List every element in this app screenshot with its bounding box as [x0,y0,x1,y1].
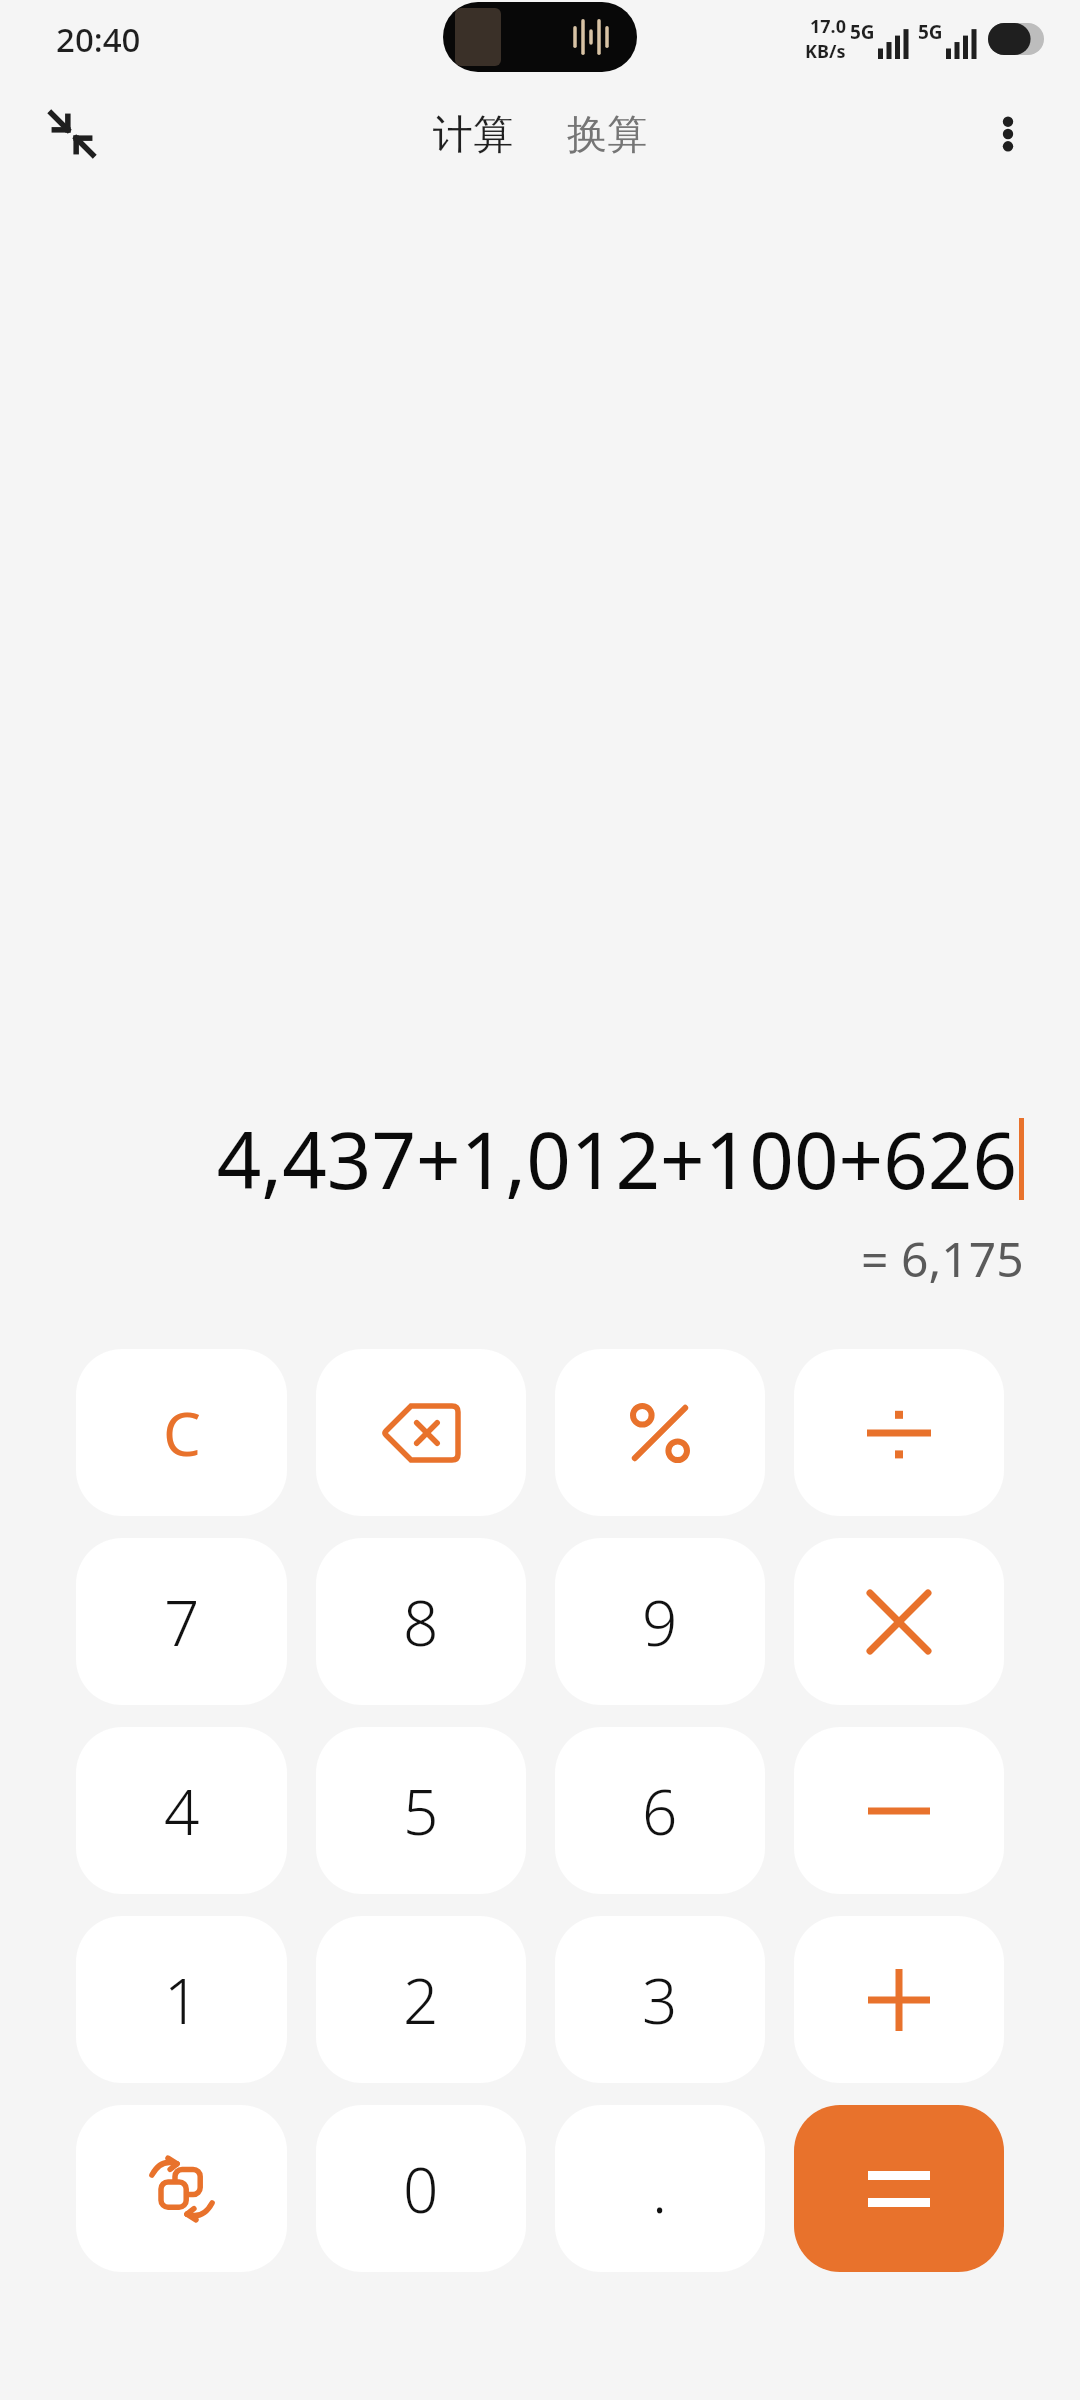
button[interactable]: Percent [555,1349,765,1516]
staticText: 8 [403,1580,439,1664]
staticText: 换算 [567,109,647,159]
button[interactable]: Multiply [794,1538,1004,1705]
button[interactable]: 计算 [419,101,527,167]
button[interactable]: 0 [316,2105,526,2272]
button[interactable]: 5 [316,1727,526,1894]
staticText: 20:40 [56,17,141,62]
button[interactable]: . [555,2105,765,2272]
staticText: 计算 [433,109,513,159]
button[interactable]: 1 [76,1916,287,2083]
staticText: 0 [403,2147,439,2231]
button[interactable]: Clear [76,1349,287,1516]
button[interactable]: Collapse [28,90,116,178]
staticText: 2 [403,1958,439,2042]
button[interactable]: 换算 [553,101,661,167]
staticText: 5 [403,1769,439,1853]
staticText: 17.0 [810,14,846,39]
staticText: 7 [164,1580,200,1664]
button[interactable]: Equals [794,2105,1004,2272]
staticText: 9 [642,1580,678,1664]
staticText: KB/s [805,39,846,64]
button[interactable]: Convert [76,2105,287,2272]
button[interactable]: 3 [555,1916,765,2083]
button[interactable]: 4 [76,1727,287,1894]
staticText: 5G [918,19,943,45]
button[interactable]: Plus [794,1916,1004,2083]
button[interactable]: More options [964,90,1052,178]
button[interactable]: 7 [76,1538,287,1705]
staticText: 4,437+1,012+100+626 [216,1106,1017,1212]
staticText: = 6,175 [861,1226,1024,1291]
staticText: 4 [164,1769,200,1853]
button[interactable]: Divide [794,1349,1004,1516]
staticText: 6 [642,1769,678,1853]
staticText: C [163,1392,201,1474]
button[interactable]: Backspace [316,1349,526,1516]
staticText: . [652,2147,668,2231]
staticText: 1 [164,1958,200,2042]
button[interactable]: 8 [316,1538,526,1705]
button[interactable]: 9 [555,1538,765,1705]
staticText: 3 [642,1958,678,2042]
button[interactable]: 6 [555,1727,765,1894]
staticText: 5G [850,19,875,45]
button[interactable]: 2 [316,1916,526,2083]
button[interactable]: Minus [794,1727,1004,1894]
